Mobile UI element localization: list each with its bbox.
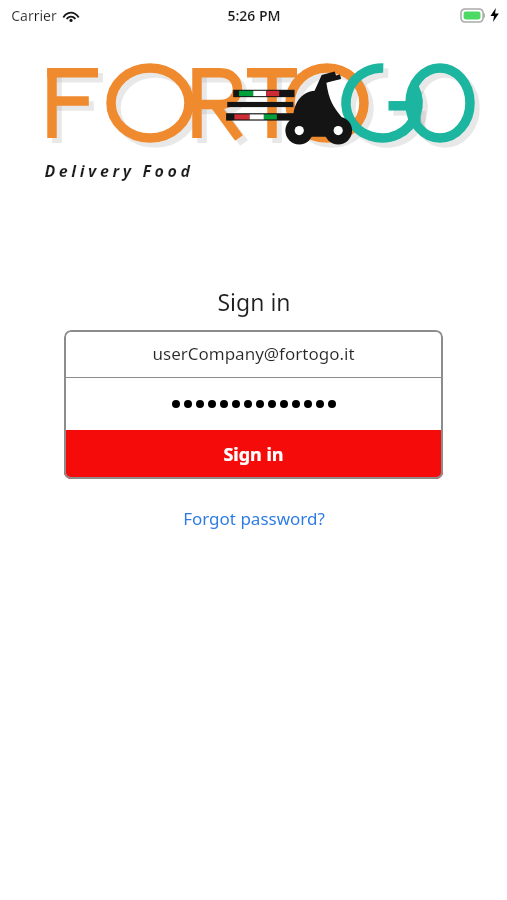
staticText: Sign in <box>217 286 291 317</box>
staticText: userCompany@fortogo.it <box>152 342 355 365</box>
button[interactable]: Password field <box>64 378 443 430</box>
staticText: Carrier <box>11 6 57 25</box>
button[interactable]: Forgot password? <box>175 503 333 534</box>
button[interactable]: Email field <box>64 330 443 377</box>
staticText: Forgot password? <box>183 507 325 530</box>
button[interactable]: Sign in <box>64 430 443 479</box>
staticText: Delivery Food <box>44 160 194 182</box>
staticText: 5:26 PM <box>227 6 281 25</box>
staticText: Sign in <box>223 442 284 467</box>
